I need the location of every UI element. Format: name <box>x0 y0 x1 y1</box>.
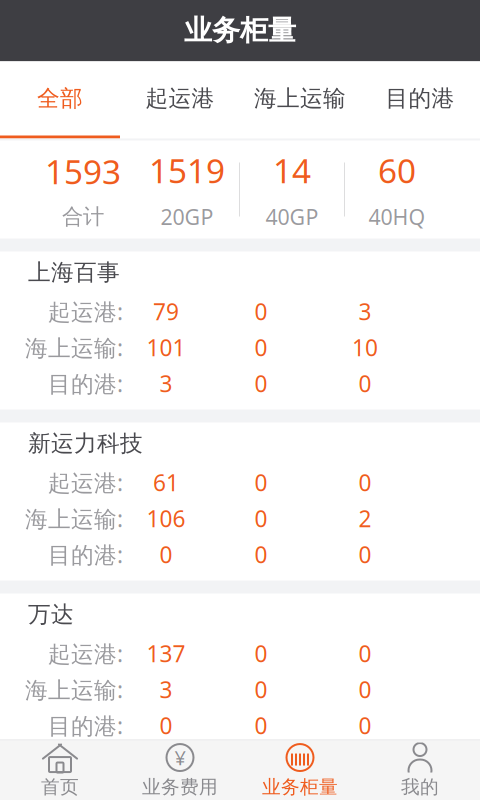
button[interactable]: 目的港 <box>360 61 480 138</box>
staticText: 101 <box>146 332 185 362</box>
staticText: 全部 <box>37 85 83 112</box>
staticText: 起运港 <box>145 85 214 112</box>
staticText: 0 <box>358 674 371 704</box>
button[interactable]: 万达 <box>0 593 480 751</box>
staticText: 目的港 <box>385 85 454 112</box>
staticText: 10 <box>352 332 378 362</box>
staticText: 起运港: <box>48 467 123 497</box>
staticText: 14 <box>273 148 311 192</box>
staticText: 目的港: <box>48 710 123 740</box>
staticText: ¥ <box>174 744 185 771</box>
staticText: 0 <box>358 638 371 668</box>
button[interactable]: 我的 <box>360 740 480 800</box>
staticText: 0 <box>159 539 172 569</box>
staticText: 0 <box>358 710 371 740</box>
staticText: 0 <box>254 539 267 569</box>
staticText: 40HQ <box>368 202 425 231</box>
staticText: 万达 <box>28 601 74 628</box>
staticText: 起运港: <box>48 296 123 326</box>
staticText: 起运港: <box>48 638 123 668</box>
staticText: 2 <box>358 503 371 533</box>
staticText: 业务柜量 <box>262 775 338 798</box>
staticText: 业务柜量 <box>184 13 296 48</box>
staticText: 1519 <box>149 148 225 192</box>
staticText: 0 <box>358 368 371 398</box>
button[interactable]: 起运港 <box>120 61 240 138</box>
button[interactable]: 全部 <box>0 61 120 138</box>
staticText: 0 <box>254 674 267 704</box>
staticText: 0 <box>358 539 371 569</box>
staticText: 合计 <box>62 203 104 230</box>
staticText: 0 <box>254 467 267 497</box>
staticText: 0 <box>254 368 267 398</box>
staticText: 目的港: <box>48 539 123 569</box>
staticText: 106 <box>146 503 185 533</box>
button[interactable]: 上海百事 <box>0 251 480 409</box>
staticText: 上海百事 <box>28 259 120 286</box>
button[interactable]: 新运力科技 <box>0 422 480 580</box>
staticText: 0 <box>254 503 267 533</box>
staticText: 0 <box>159 710 172 740</box>
staticText: 0 <box>254 332 267 362</box>
staticText: 3 <box>159 368 172 398</box>
staticText: 海上运输 <box>254 85 346 112</box>
staticText: 61 <box>153 467 179 497</box>
staticText: 1593 <box>45 149 121 194</box>
staticText: 3 <box>358 296 371 326</box>
staticText: 目的港: <box>48 368 123 398</box>
staticText: 40GP <box>265 202 318 231</box>
staticText: 3 <box>159 674 172 704</box>
button[interactable]: ¥ <box>120 740 240 800</box>
button[interactable]: 首页 <box>0 740 120 800</box>
staticText: 海上运输: <box>25 332 123 362</box>
button[interactable]: 海上运输 <box>240 61 360 138</box>
staticText: 我的 <box>401 775 439 798</box>
staticText: 海上运输: <box>25 503 123 533</box>
staticText: 海上运输: <box>25 674 123 704</box>
staticText: 0 <box>358 467 371 497</box>
staticText: 60 <box>378 148 416 192</box>
staticText: 0 <box>254 296 267 326</box>
staticText: 新运力科技 <box>28 430 143 457</box>
staticText: 业务费用 <box>142 775 218 798</box>
staticText: 79 <box>153 296 179 326</box>
staticText: 137 <box>146 638 185 668</box>
staticText: 0 <box>254 710 267 740</box>
staticText: 首页 <box>41 775 79 798</box>
button[interactable]: 业务柜量 <box>240 740 360 800</box>
staticText: 0 <box>254 638 267 668</box>
staticText: 20GP <box>160 202 213 231</box>
